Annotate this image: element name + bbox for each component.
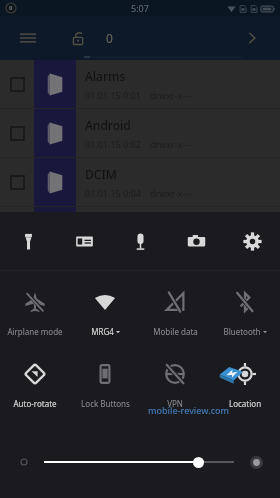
staticText: Location — [229, 398, 262, 409]
button[interactable]: Download — [0, 207, 280, 255]
staticText: 0 — [106, 30, 113, 46]
button[interactable]: Airplane mode — [0, 277, 70, 349]
button[interactable] — [44, 451, 234, 473]
button[interactable]: Menu — [12, 22, 44, 54]
button[interactable]: MRG4 — [70, 277, 140, 349]
staticText: 01.01.15 0:04 — [85, 187, 141, 199]
button[interactable]: Android — [0, 109, 280, 157]
staticText: drwxr-x--- — [150, 89, 192, 101]
staticText: drwxr-x--- — [150, 138, 192, 150]
staticText: Lock Buttons — [81, 398, 130, 409]
staticText: Android — [85, 117, 131, 133]
staticText: Alarms — [85, 68, 126, 84]
button[interactable]: Location — [210, 349, 280, 421]
button[interactable]: DCIM — [0, 158, 280, 206]
staticText: mobile-review.com — [148, 404, 230, 416]
button[interactable]: Lower brightness — [14, 452, 34, 472]
staticText: MRG4 — [91, 326, 114, 337]
button[interactable]: Recorder — [112, 212, 168, 270]
button[interactable]: Settings — [224, 212, 280, 270]
staticText: Mobile data — [153, 326, 198, 337]
button[interactable]: Auto-rotate — [0, 349, 70, 421]
staticText: 0 — [9, 4, 13, 12]
button[interactable]: Bluetooth — [210, 277, 280, 349]
staticText: 01.01.15 0:05 — [85, 236, 141, 248]
staticText: VPN — [167, 398, 183, 409]
staticText: drwxr-x--- — [150, 236, 192, 248]
staticText: drwxr-x--- — [150, 187, 192, 199]
button[interactable]: Alarms — [0, 60, 280, 108]
staticText: 5:07 — [131, 2, 149, 14]
button[interactable]: Auto brightness — [246, 452, 266, 472]
staticText: Auto-rotate — [13, 398, 57, 409]
staticText: 01.01.15 0:02 — [85, 138, 141, 150]
button[interactable]: Lock Buttons — [70, 349, 140, 421]
staticText: Airplane mode — [7, 326, 63, 337]
staticText: DCIM — [85, 166, 117, 182]
button[interactable]: Flashlight — [0, 212, 56, 270]
button[interactable]: Mobile data — [140, 277, 210, 349]
button[interactable]: Forward — [236, 22, 268, 54]
button[interactable]: VPN — [140, 349, 210, 421]
button[interactable]: Unlock — [62, 22, 94, 54]
staticText: 01.01.15 0:01 — [85, 89, 141, 101]
button[interactable]: Camera — [168, 212, 224, 270]
staticText: Bluetooth — [223, 326, 261, 337]
button[interactable]: Calculator — [56, 212, 112, 270]
